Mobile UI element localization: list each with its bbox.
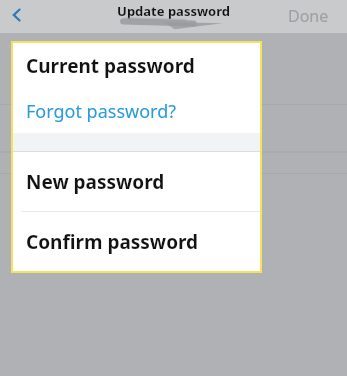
staticText: Confirm password — [26, 229, 199, 255]
staticText: New password — [26, 169, 165, 195]
button[interactable]: Current password — [11, 43, 262, 89]
button[interactable]: New password — [11, 152, 262, 211]
button[interactable]: Done — [284, 0, 333, 32]
staticText: Current password — [26, 53, 195, 79]
button[interactable]: Back — [2, 0, 32, 30]
staticText: Forgot password? — [26, 99, 177, 124]
button[interactable]: Forgot password? — [11, 89, 262, 133]
button[interactable]: Confirm password — [11, 212, 262, 271]
staticText: Done — [288, 5, 329, 27]
staticText: Update password — [117, 2, 230, 20]
